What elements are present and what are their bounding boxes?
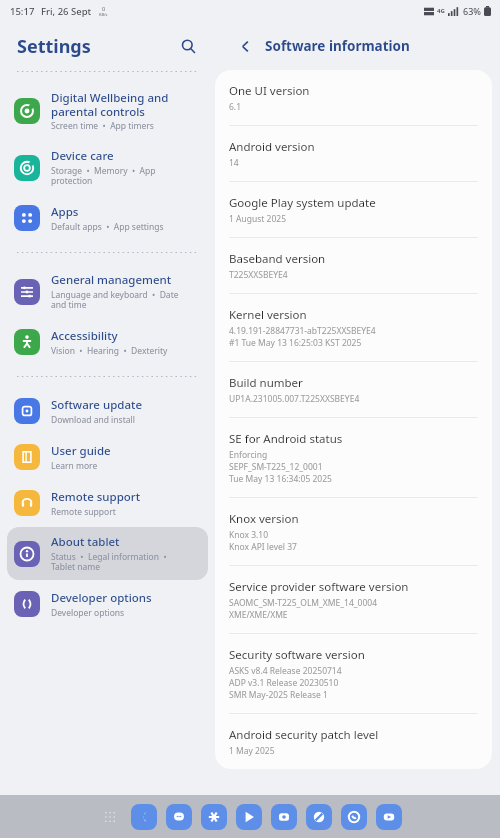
- button[interactable]: Baseband version: [215, 238, 492, 294]
- staticText: T225XXSBEYE4: [229, 269, 288, 281]
- button[interactable]: Kernel version: [215, 294, 492, 362]
- staticText: Language and keyboard • Date and time: [51, 289, 179, 311]
- staticText: Knox 3.10: [229, 529, 269, 541]
- staticText: Remote support: [51, 506, 116, 518]
- button[interactable]: Camera: [271, 804, 297, 830]
- staticText: Tue May 13 16:34:05 2025: [229, 473, 332, 485]
- staticText: General management: [51, 272, 172, 288]
- staticText: Vision • Hearing • Dexterity: [51, 345, 168, 357]
- button[interactable]: Google Play system update: [215, 182, 492, 238]
- button[interactable]: Android security patch level: [215, 714, 492, 769]
- staticText: User guide: [51, 443, 111, 459]
- staticText: Accessibility: [51, 328, 118, 344]
- staticText: Baseband version: [229, 251, 326, 267]
- button[interactable]: SE for Android status: [215, 418, 492, 498]
- staticText: Screen time • App timers: [51, 120, 154, 132]
- staticText: 1 August 2025: [229, 213, 287, 225]
- staticText: Status • Legal information • Tablet name: [51, 551, 167, 573]
- staticText: ADP v3.1 Release 20230510: [229, 677, 339, 689]
- staticText: Kernel version: [229, 307, 307, 323]
- staticText: Developer options: [51, 590, 152, 606]
- staticText: Fri, 26 Sept: [41, 5, 92, 18]
- staticText: Knox API level 37: [229, 541, 297, 553]
- button[interactable]: Knox version: [215, 498, 492, 566]
- button[interactable]: About tablet: [7, 527, 208, 580]
- staticText: Security software version: [229, 647, 365, 663]
- button[interactable]: One UI version: [215, 70, 492, 126]
- button[interactable]: Back: [233, 34, 257, 58]
- staticText: Knox version: [229, 511, 299, 527]
- button[interactable]: Developer options: [7, 582, 208, 626]
- staticText: XME/XME/XME: [229, 609, 288, 621]
- staticText: SAOMC_SM-T225_OLM_XME_14_0004: [229, 597, 377, 609]
- staticText: Enforcing: [229, 449, 268, 461]
- staticText: 0: [102, 5, 106, 12]
- staticText: SEPF_SM-T225_12_0001: [229, 461, 323, 473]
- button[interactable]: General management: [7, 265, 208, 318]
- button[interactable]: User guide: [7, 435, 208, 479]
- staticText: Device care: [51, 148, 114, 164]
- button[interactable]: Digital Wellbeing and parental controls: [7, 83, 208, 139]
- staticText: Google Play system update: [229, 195, 376, 211]
- staticText: Download and install: [51, 414, 135, 426]
- button[interactable]: Search: [175, 33, 201, 59]
- staticText: SE for Android status: [229, 431, 343, 447]
- staticText: ASKS v8.4 Release 20250714: [229, 665, 342, 677]
- staticText: Remote support: [51, 489, 141, 505]
- staticText: 1 May 2025: [229, 745, 275, 757]
- staticText: 14: [229, 157, 239, 169]
- button[interactable]: WhatsApp: [341, 804, 367, 830]
- button[interactable]: Device care: [7, 141, 208, 194]
- staticText: UP1A.231005.007.T225XXSBEYE4: [229, 393, 360, 405]
- staticText: 15:17: [10, 5, 35, 18]
- staticText: Storage • Memory • App protection: [51, 165, 156, 187]
- staticText: Default apps • App settings: [51, 221, 164, 233]
- staticText: Learn more: [51, 460, 98, 472]
- button[interactable]: Security software version: [215, 634, 492, 714]
- staticText: SMR May-2025 Release 1: [229, 689, 328, 701]
- button[interactable]: Apps: [7, 196, 208, 240]
- button[interactable]: Phone: [131, 804, 157, 830]
- staticText: About tablet: [51, 534, 120, 550]
- button[interactable]: Android version: [215, 126, 492, 182]
- staticText: Software information: [265, 37, 410, 55]
- staticText: One UI version: [229, 83, 310, 99]
- staticText: Apps: [51, 204, 79, 220]
- staticText: Digital Wellbeing and parental controls: [51, 90, 169, 119]
- button[interactable]: Play Store: [236, 804, 262, 830]
- staticText: 4G: [437, 7, 445, 15]
- button[interactable]: Remote support: [7, 481, 208, 525]
- button[interactable]: Messages: [166, 804, 192, 830]
- staticText: Android security patch level: [229, 727, 379, 743]
- button[interactable]: Accessibility: [7, 320, 208, 364]
- button[interactable]: Internet: [306, 804, 332, 830]
- button[interactable]: Service provider software version: [215, 566, 492, 634]
- staticText: Settings: [17, 34, 91, 59]
- staticText: Developer options: [51, 607, 125, 619]
- staticText: KB/s: [99, 12, 108, 17]
- staticText: 4.19.191-28847731-abT225XXSBEYE4: [229, 325, 376, 337]
- button[interactable]: Bixby: [201, 804, 227, 830]
- staticText: 63%: [463, 5, 481, 17]
- button[interactable]: YouTube: [376, 804, 402, 830]
- staticText: Service provider software version: [229, 579, 409, 595]
- staticText: Android version: [229, 139, 315, 155]
- staticText: 6.1: [229, 101, 242, 113]
- staticText: Build number: [229, 375, 303, 391]
- button[interactable]: Build number: [215, 362, 492, 418]
- button[interactable]: All apps: [98, 805, 122, 829]
- button[interactable]: Software update: [7, 389, 208, 433]
- staticText: #1 Tue May 13 16:25:03 KST 2025: [229, 337, 362, 349]
- staticText: Software update: [51, 397, 142, 413]
